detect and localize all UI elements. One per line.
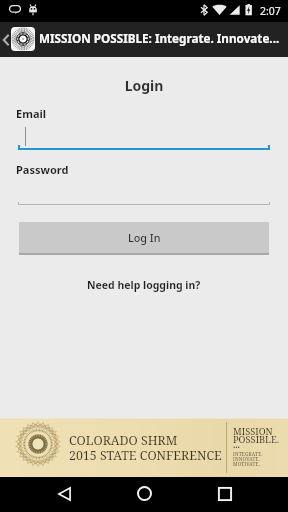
button[interactable] (0, 173, 288, 206)
staticText: INTEGRATE. INNOVATE. MOTIVATE. (233, 451, 263, 467)
staticText: 2:07 (260, 4, 281, 18)
button[interactable]: Navigate up (0, 22, 11, 57)
button[interactable]: COLORADO SHRM (0, 418, 288, 477)
other: App icon (11, 27, 35, 51)
button[interactable]: Need help logging in? (87, 278, 201, 292)
button[interactable]: Home (122, 477, 166, 512)
staticText: Login (0, 76, 288, 95)
staticText: Email (16, 106, 47, 121)
staticText: MISSION POSSIBLE: Integrate. Innovate... (39, 30, 288, 46)
staticText: ... (233, 439, 240, 450)
staticText: MISSION (233, 425, 273, 438)
button[interactable]: Log In (19, 222, 269, 253)
button[interactable] (0, 117, 288, 150)
staticText: 2015 STATE CONFERENCE (69, 447, 222, 464)
button[interactable]: Back (42, 477, 86, 512)
staticText: POSSIBLE. (233, 433, 280, 446)
staticText: COLORADO SHRM (69, 432, 178, 449)
button[interactable]: Recent apps (202, 477, 246, 512)
staticText: Log In (128, 230, 161, 245)
staticText: Password (16, 162, 69, 177)
